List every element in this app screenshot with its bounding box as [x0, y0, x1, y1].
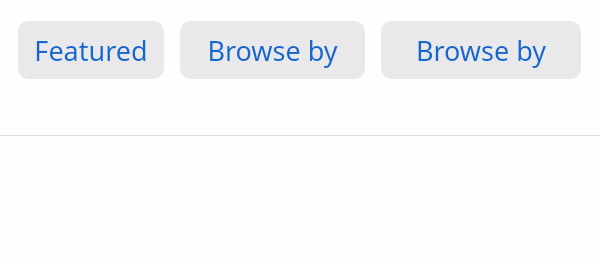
- staticText: Featured: [34, 32, 148, 69]
- button[interactable]: Browse by Type: [180, 21, 365, 79]
- staticText: Browse by Rating: [381, 32, 581, 69]
- button[interactable]: Featured: [18, 21, 164, 79]
- button[interactable]: Browse by Rating: [381, 21, 581, 79]
- staticText: Browse by Type: [180, 32, 365, 69]
